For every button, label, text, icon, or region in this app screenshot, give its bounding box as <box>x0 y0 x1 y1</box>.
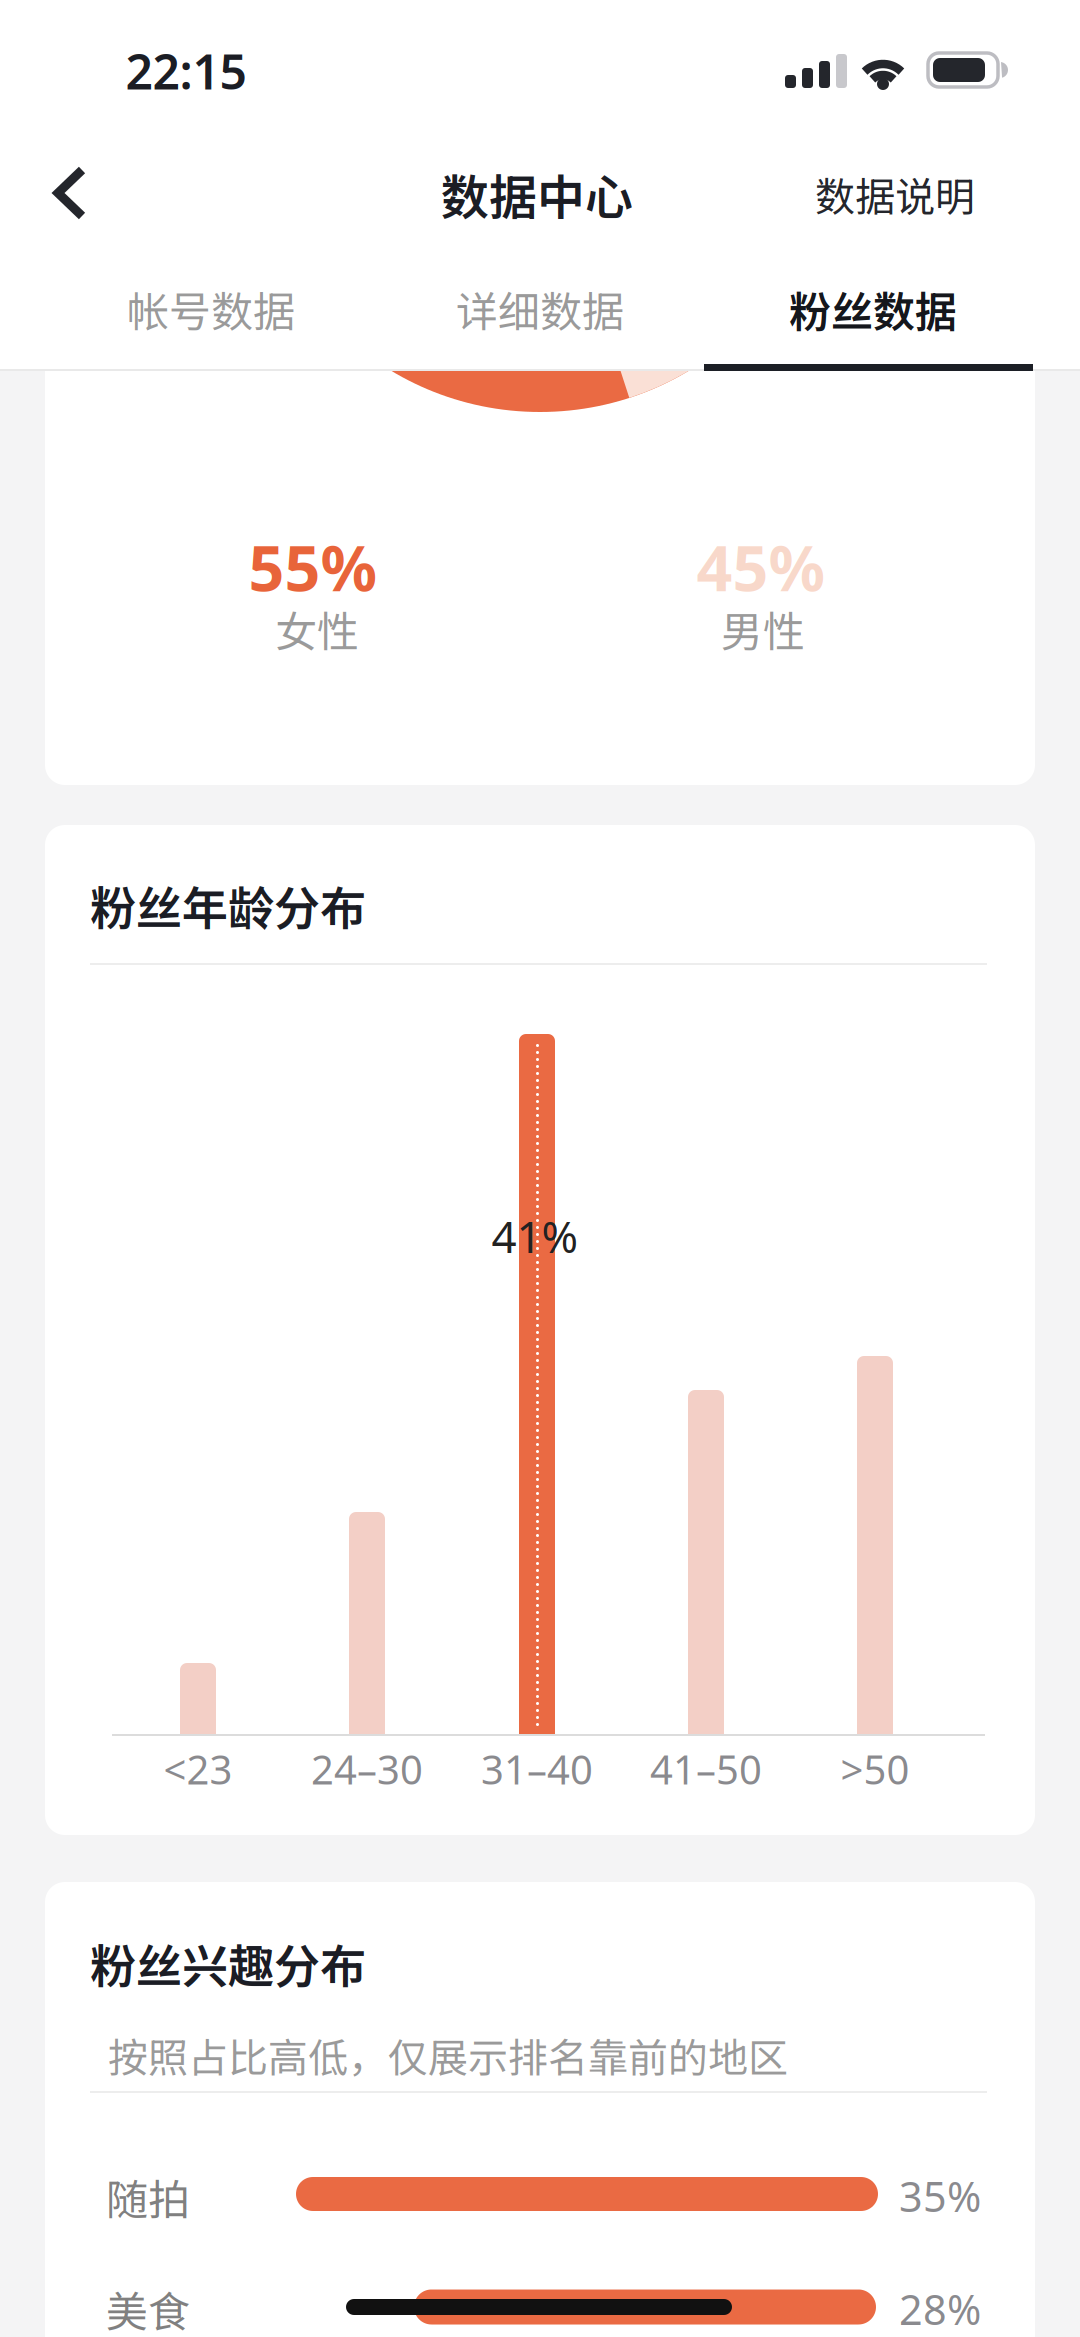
staticText: 粉丝兴趣分布 <box>90 1930 366 1997</box>
staticText: 数据说明 <box>815 165 975 223</box>
staticText: 数据中心 <box>441 159 633 229</box>
staticText: 41% <box>491 1207 578 1265</box>
button[interactable]: Back <box>40 158 110 228</box>
staticText: 随拍 <box>106 2167 190 2227</box>
staticText: 女性 <box>275 599 359 659</box>
staticText: 31–40 <box>481 1742 593 1795</box>
staticText: 35% <box>899 2169 981 2223</box>
staticText: 粉丝年龄分布 <box>90 872 366 939</box>
staticText: 45% <box>696 525 825 609</box>
staticText: 美食 <box>106 2279 190 2337</box>
staticText: 41–50 <box>650 1742 762 1795</box>
staticText: >50 <box>840 1742 909 1795</box>
staticText: 男性 <box>721 599 805 659</box>
button[interactable]: 帐号数据 <box>81 269 341 349</box>
staticText: <23 <box>163 1742 232 1795</box>
staticText: 28% <box>899 2282 981 2336</box>
button[interactable]: 粉丝数据 <box>743 269 1003 349</box>
staticText: 详细数据 <box>456 279 624 339</box>
staticText: 粉丝数据 <box>789 279 957 339</box>
staticText: 帐号数据 <box>127 279 295 339</box>
staticText: 22:15 <box>125 39 246 103</box>
staticText: 按照占比高低，仅展示排名靠前的地区 <box>108 2026 788 2084</box>
staticText: 24–30 <box>311 1742 423 1795</box>
button[interactable]: 详细数据 <box>410 269 670 349</box>
button[interactable]: 数据说明 <box>815 165 975 223</box>
staticText: 55% <box>248 525 377 609</box>
